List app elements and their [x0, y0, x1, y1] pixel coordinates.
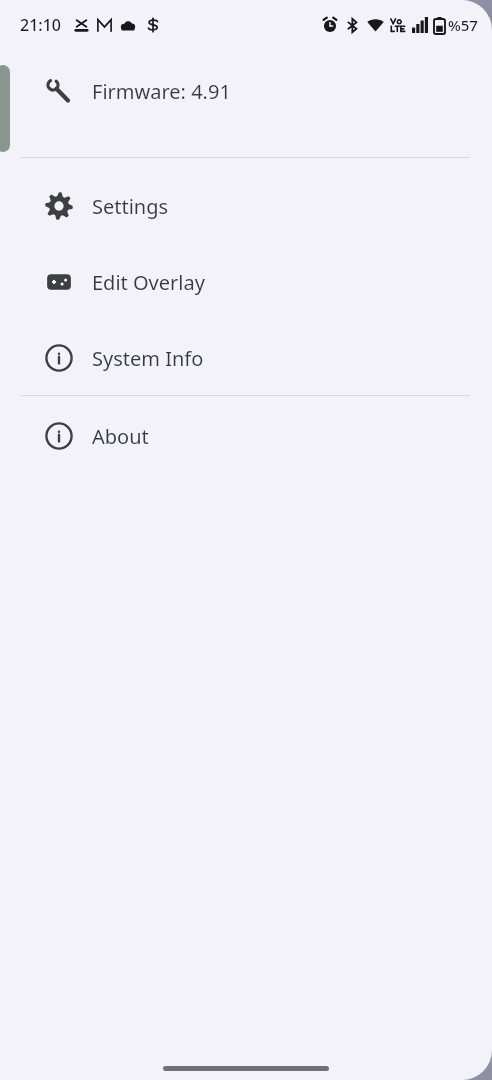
staticText: Settings [92, 193, 169, 220]
button[interactable]: About [0, 408, 492, 464]
button[interactable]: Edit Overlay [0, 254, 492, 310]
button[interactable]: Firmware: 4.91 [0, 60, 492, 122]
button[interactable]: System Info [0, 330, 492, 386]
staticText: Firmware: 4.91 [92, 78, 231, 105]
staticText: System Info [92, 345, 204, 372]
staticText: About [92, 423, 149, 450]
button[interactable]: Settings [0, 178, 492, 234]
staticText: 21:10 [20, 14, 61, 36]
staticText: %57 [448, 15, 478, 35]
staticText: Edit Overlay [92, 269, 205, 296]
